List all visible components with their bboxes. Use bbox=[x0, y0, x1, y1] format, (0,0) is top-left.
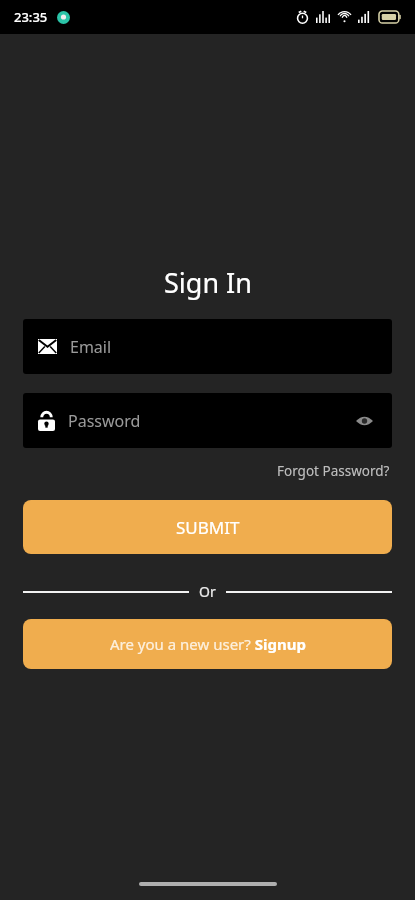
staticText: Are you a new user? Signup bbox=[110, 634, 306, 654]
button[interactable]: SUBMIT bbox=[23, 500, 392, 554]
button[interactable]: Are you a new user? Signup bbox=[23, 619, 392, 669]
staticText: SUBMIT bbox=[176, 516, 240, 539]
staticText: 23:35 bbox=[14, 8, 48, 26]
button[interactable]: Password bbox=[23, 393, 392, 448]
button[interactable]: Forgot Password? bbox=[275, 460, 392, 482]
button[interactable]: Email bbox=[23, 319, 392, 374]
staticText: Or bbox=[199, 582, 216, 601]
staticText: Forgot Password? bbox=[277, 462, 390, 480]
staticText: Sign In bbox=[164, 264, 252, 301]
staticText: Email bbox=[70, 336, 112, 358]
button[interactable]: Show password bbox=[352, 409, 376, 433]
staticText: Password bbox=[68, 410, 141, 432]
